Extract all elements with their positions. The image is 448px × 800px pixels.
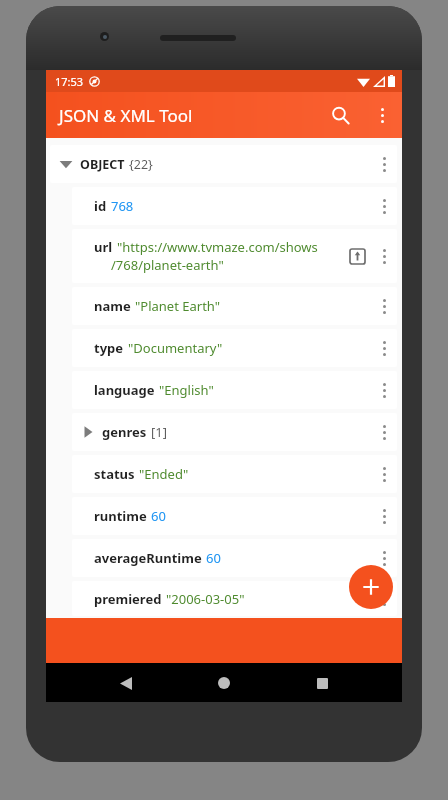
staticText: 17:53 bbox=[55, 74, 84, 89]
staticText: {22} bbox=[129, 156, 153, 173]
staticText: "English" bbox=[159, 381, 214, 399]
button[interactable]: Row options bbox=[371, 581, 397, 616]
button[interactable]: Row options bbox=[371, 287, 397, 325]
staticText: 60 bbox=[151, 507, 166, 525]
button[interactable]: name bbox=[72, 287, 397, 325]
staticText: "2006-03-05" bbox=[166, 590, 245, 608]
staticText: name bbox=[94, 297, 131, 315]
button[interactable]: type bbox=[72, 329, 397, 367]
staticText: "https://www.tvmaze.com/shows bbox=[117, 238, 318, 256]
button[interactable]: Row options bbox=[371, 371, 397, 409]
button[interactable]: Row options bbox=[371, 413, 397, 451]
button[interactable]: Search bbox=[318, 93, 362, 137]
staticText: url bbox=[94, 238, 113, 256]
staticText: status bbox=[94, 465, 135, 483]
staticText: language bbox=[94, 381, 155, 399]
button[interactable]: runtime bbox=[72, 497, 397, 535]
button[interactable]: Back bbox=[108, 665, 144, 701]
button[interactable]: More options bbox=[362, 95, 402, 135]
staticText: JSON & XML Tool bbox=[59, 104, 193, 127]
staticText: id bbox=[94, 197, 107, 215]
button[interactable]: Row options bbox=[371, 455, 397, 493]
staticText: type bbox=[94, 339, 124, 357]
button[interactable]: language bbox=[72, 371, 397, 409]
button[interactable]: Recent apps bbox=[304, 665, 340, 701]
staticText: [1] bbox=[151, 423, 167, 441]
staticText: runtime bbox=[94, 507, 147, 525]
button[interactable]: id bbox=[72, 187, 397, 225]
staticText: OBJECT bbox=[80, 156, 125, 173]
button[interactable]: Row options bbox=[371, 237, 397, 275]
staticText: "Planet Earth" bbox=[135, 297, 221, 315]
button[interactable]: status bbox=[72, 455, 397, 493]
staticText: 768 bbox=[111, 197, 134, 215]
button[interactable]: averageRuntime bbox=[72, 539, 397, 577]
staticText: "Documentary" bbox=[128, 339, 223, 357]
staticText: averageRuntime bbox=[94, 549, 202, 567]
button[interactable]: url bbox=[72, 229, 397, 283]
button[interactable]: Row options bbox=[371, 187, 397, 225]
button[interactable]: Row options bbox=[371, 329, 397, 367]
button[interactable]: Row options bbox=[371, 539, 397, 577]
button[interactable]: Add bbox=[349, 565, 393, 609]
button[interactable]: premiered bbox=[72, 581, 397, 616]
staticText: genres bbox=[102, 423, 147, 441]
button[interactable]: Home bbox=[206, 665, 242, 701]
button[interactable]: Open link bbox=[343, 242, 371, 270]
button[interactable]: genres bbox=[72, 413, 397, 451]
staticText: /768/planet-earth" bbox=[111, 256, 224, 274]
staticText: "Ended" bbox=[139, 465, 189, 483]
button[interactable]: Row options bbox=[371, 145, 397, 183]
staticText: 60 bbox=[206, 549, 221, 567]
button[interactable]: OBJECT bbox=[50, 145, 397, 183]
staticText: premiered bbox=[94, 590, 162, 608]
button[interactable]: Row options bbox=[371, 497, 397, 535]
